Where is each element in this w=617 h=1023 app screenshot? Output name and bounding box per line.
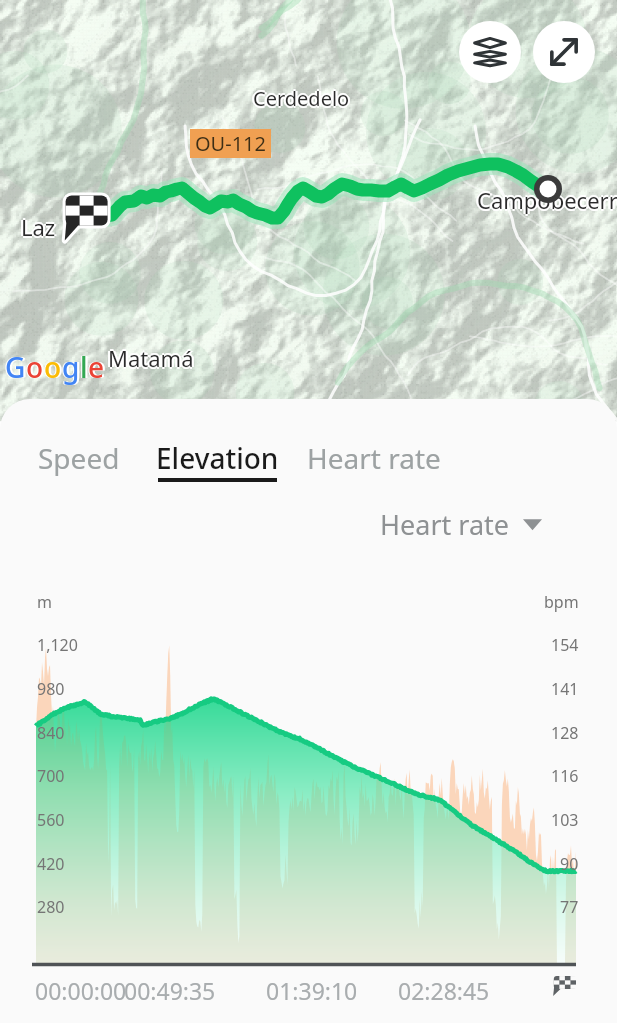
- staticText: 280: [37, 896, 65, 918]
- staticText: 980: [37, 678, 65, 700]
- button[interactable]: Elevation: [156, 439, 279, 482]
- staticText: g: [61, 348, 79, 386]
- staticText: bpm: [544, 591, 579, 613]
- staticText: e: [90, 348, 107, 386]
- staticText: Campobecerros: [477, 187, 617, 217]
- staticText: o: [25, 348, 43, 386]
- staticText: 90: [560, 853, 579, 875]
- button[interactable]: OU-112: [195, 130, 266, 157]
- staticText: Cerdedelo: [253, 83, 350, 110]
- button[interactable]: Map layers: [459, 21, 521, 83]
- staticText: o: [26, 348, 44, 386]
- staticText: o: [46, 348, 64, 386]
- staticText: Laz: [19, 212, 54, 242]
- staticText: e: [88, 348, 105, 386]
- staticText: 560: [37, 809, 65, 831]
- staticText: 00:00:00: [35, 975, 127, 1006]
- staticText: l: [80, 348, 88, 386]
- staticText: G: [5, 348, 26, 386]
- staticText: l: [79, 348, 87, 386]
- staticText: Campobecerros: [477, 183, 617, 213]
- staticText: 154: [551, 634, 579, 656]
- staticText: Cerdedelo: [255, 85, 352, 112]
- staticText: 700: [37, 765, 65, 787]
- staticText: Cerdedelo: [253, 87, 350, 114]
- staticText: G: [4, 348, 25, 386]
- staticText: m: [37, 591, 52, 613]
- staticText: OU-112: [195, 130, 266, 157]
- staticText: 116: [551, 765, 579, 787]
- staticText: g: [62, 348, 80, 386]
- staticText: o: [44, 348, 62, 386]
- staticText: 01:39:10: [266, 975, 358, 1006]
- staticText: Elevation: [156, 439, 279, 477]
- staticText: Speed: [38, 439, 120, 477]
- staticText: Campobecerros: [479, 185, 617, 215]
- staticText: Cerdedelo: [251, 85, 348, 112]
- staticText: Matamá: [108, 343, 194, 373]
- button[interactable]: Heart rate: [307, 439, 441, 477]
- button[interactable]: Expand map: [533, 21, 595, 83]
- staticText: Laz: [21, 210, 56, 240]
- button[interactable]: Speed: [38, 439, 120, 477]
- staticText: Matamá: [108, 345, 194, 375]
- staticText: Matamá: [108, 341, 194, 371]
- staticText: 420: [37, 853, 65, 875]
- staticText: Campobecerros: [477, 185, 617, 215]
- staticText: l: [82, 348, 90, 386]
- staticText: 141: [551, 678, 579, 700]
- staticText: g: [64, 348, 82, 386]
- staticText: Laz: [21, 214, 56, 244]
- staticText: G: [7, 348, 28, 386]
- staticText: Campobecerros: [475, 185, 617, 215]
- button[interactable]: Heart rate: [380, 506, 542, 543]
- staticText: o: [43, 348, 61, 386]
- staticText: 02:28:45: [398, 975, 490, 1006]
- staticText: 1,120: [37, 634, 78, 656]
- staticText: Heart rate: [307, 439, 441, 477]
- staticText: Matamá: [106, 343, 192, 373]
- staticText: o: [28, 348, 46, 386]
- staticText: Heart rate: [380, 506, 510, 543]
- staticText: Matamá: [110, 343, 196, 373]
- staticText: Laz: [23, 212, 58, 242]
- staticText: Cerdedelo: [253, 85, 350, 112]
- staticText: 840: [37, 722, 65, 744]
- staticText: 128: [551, 722, 579, 744]
- staticText: 00:49:35: [124, 975, 216, 1006]
- staticText: 77: [560, 896, 579, 918]
- staticText: Laz: [21, 212, 56, 242]
- staticText: e: [87, 348, 104, 386]
- staticText: 103: [551, 809, 579, 831]
